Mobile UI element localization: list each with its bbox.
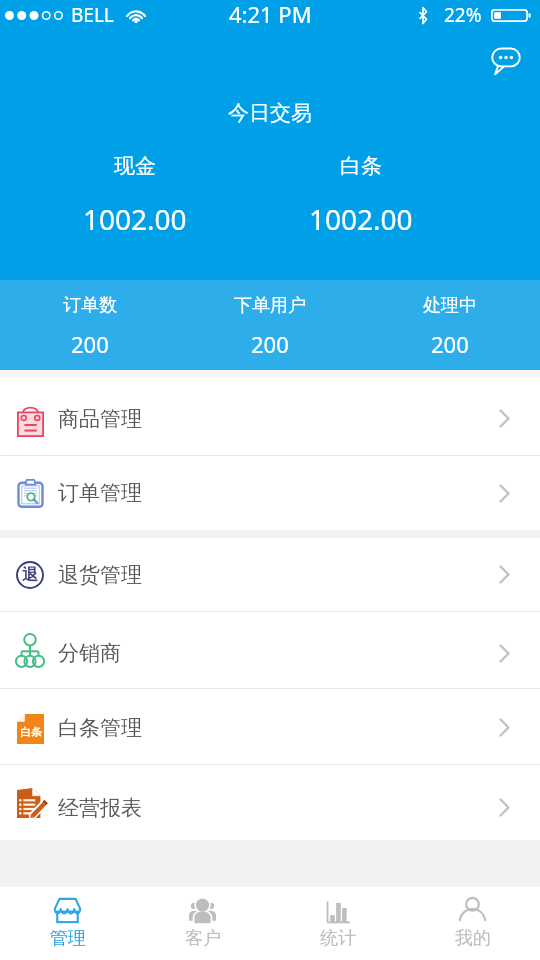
- staticText: 200: [251, 329, 289, 359]
- staticText: 白条管理: [58, 715, 142, 741]
- staticText: 白条: [340, 153, 382, 179]
- staticText: 订单管理: [58, 480, 142, 506]
- button[interactable]: 白条: [0, 689, 540, 764]
- button[interactable]: 经营报表: [0, 765, 540, 840]
- staticText: 商品管理: [58, 406, 142, 432]
- staticText: 4:21 PM: [229, 0, 312, 29]
- staticText: 管理: [50, 927, 86, 950]
- button[interactable]: 分销商: [0, 612, 540, 688]
- button[interactable]: 我的: [405, 887, 540, 960]
- staticText: 现金: [114, 153, 156, 179]
- staticText: 200: [71, 329, 109, 359]
- button[interactable]: 订单管理: [0, 456, 540, 530]
- staticText: 客户: [185, 927, 221, 950]
- button[interactable]: 退: [0, 538, 540, 611]
- button[interactable]: 商品管理: [0, 378, 540, 455]
- staticText: 1002.00: [83, 200, 187, 238]
- staticText: BELL: [71, 2, 114, 28]
- staticText: 下单用户: [234, 294, 306, 317]
- button[interactable]: 客户: [135, 887, 270, 960]
- button[interactable]: 统计: [270, 887, 405, 960]
- staticText: 退: [22, 565, 38, 585]
- staticText: 经营报表: [58, 795, 142, 821]
- staticText: 200: [431, 329, 469, 359]
- staticText: 订单数: [63, 294, 117, 317]
- staticText: 今日交易: [0, 100, 540, 126]
- staticText: 统计: [320, 927, 356, 950]
- staticText: 白条: [20, 725, 42, 739]
- staticText: 处理中: [423, 294, 477, 317]
- staticText: 我的: [455, 927, 491, 950]
- staticText: 1002.00: [309, 200, 413, 238]
- staticText: 22%: [444, 2, 482, 28]
- staticText: 退货管理: [58, 562, 142, 588]
- button[interactable]: Messages: [484, 38, 528, 82]
- staticText: 分销商: [58, 640, 121, 666]
- button[interactable]: 管理: [0, 887, 135, 960]
